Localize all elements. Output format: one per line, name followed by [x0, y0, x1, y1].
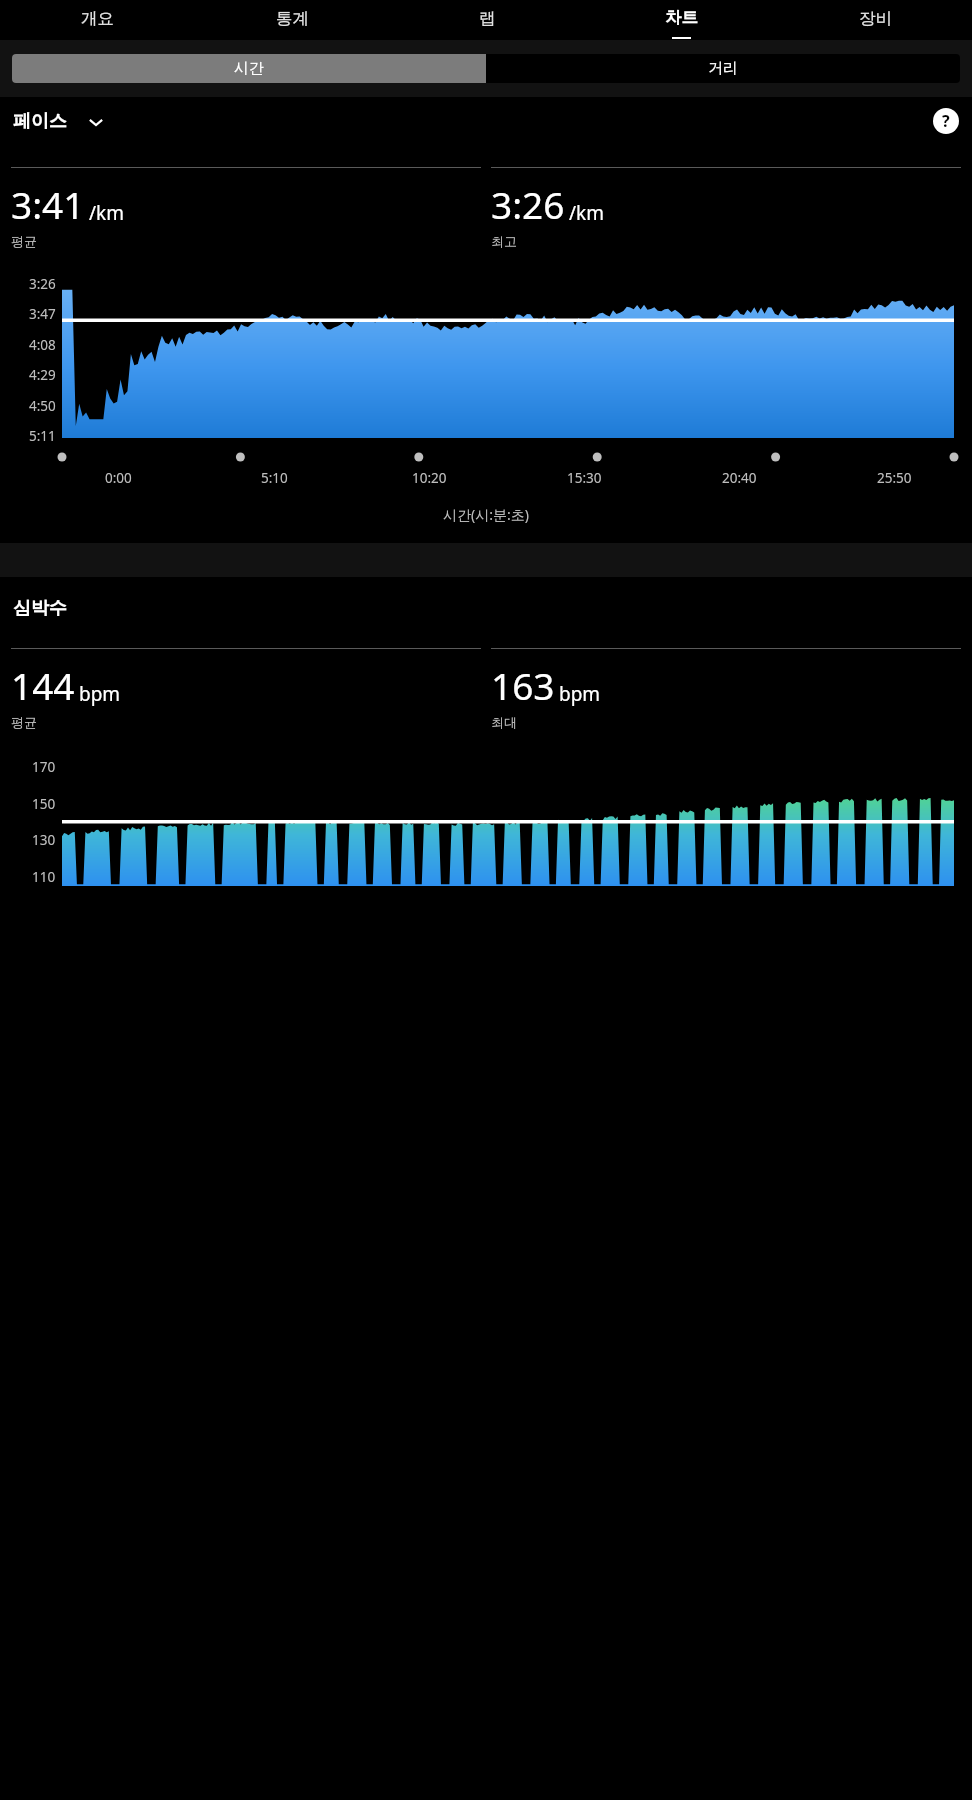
staticText: bpm: [79, 681, 121, 707]
staticText: 통계: [276, 8, 309, 29]
staticText: 5:11: [29, 427, 56, 445]
button[interactable]: 페이스: [13, 110, 107, 133]
staticText: 4:29: [29, 366, 56, 384]
staticText: 랩: [479, 8, 496, 29]
staticText: 3:26: [29, 275, 56, 293]
button[interactable]: 장비: [778, 0, 972, 40]
staticText: 페이스: [13, 110, 67, 133]
staticText: 15:30: [567, 469, 602, 487]
staticText: 심박수: [13, 597, 67, 620]
staticText: 최대: [491, 714, 517, 730]
button[interactable]: 통계: [195, 0, 390, 40]
button[interactable]: 거리: [486, 54, 960, 83]
staticText: /km: [569, 200, 604, 226]
staticText: 시간(시:분:초): [0, 505, 972, 524]
button[interactable]: 차트: [584, 0, 778, 40]
staticText: ?: [942, 110, 950, 132]
staticText: 평균: [11, 233, 37, 249]
staticText: 150: [32, 795, 56, 813]
staticText: 시간: [234, 59, 264, 78]
staticText: 장비: [859, 8, 892, 29]
staticText: 평균: [11, 714, 37, 730]
staticText: 최고: [491, 233, 517, 249]
staticText: bpm: [559, 681, 601, 707]
staticText: /km: [89, 200, 124, 226]
staticText: 0:00: [105, 469, 132, 487]
staticText: 5:10: [261, 469, 288, 487]
staticText: 3:26: [491, 179, 565, 229]
staticText: 3:41: [11, 179, 85, 229]
staticText: 20:40: [722, 469, 757, 487]
button[interactable]: 도움말: [933, 108, 959, 134]
staticText: 개요: [81, 8, 114, 29]
staticText: 110: [32, 868, 56, 886]
button[interactable]: 랩: [390, 0, 584, 40]
staticText: 170: [32, 758, 56, 776]
staticText: 거리: [708, 59, 738, 78]
staticText: 4:08: [29, 336, 56, 354]
staticText: 4:50: [29, 397, 56, 415]
staticText: 차트: [665, 7, 698, 28]
button[interactable]: 개요: [0, 0, 195, 40]
staticText: 10:20: [412, 469, 447, 487]
staticText: 25:50: [877, 469, 912, 487]
staticText: 3:47: [29, 305, 56, 323]
staticText: 144: [11, 660, 75, 710]
button[interactable]: 시간: [12, 54, 486, 83]
staticText: 130: [32, 831, 56, 849]
staticText: 163: [491, 660, 555, 710]
